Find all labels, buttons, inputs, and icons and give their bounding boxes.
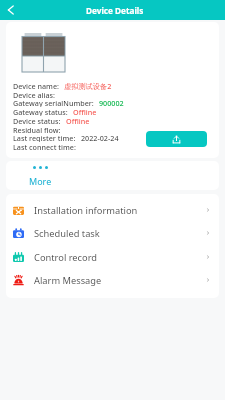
staticText: 900002 xyxy=(99,98,124,107)
staticText: Installation information xyxy=(34,204,138,217)
staticText: Device Details xyxy=(86,5,144,16)
button[interactable]: Control record xyxy=(6,245,219,269)
staticText: Device status: xyxy=(13,116,61,125)
staticText: Offline xyxy=(73,107,97,116)
button[interactable]: Upload xyxy=(146,131,207,147)
staticText: 虚拟测试设备2 xyxy=(64,81,112,90)
staticText: Offline xyxy=(66,116,90,125)
staticText: Last connect time: xyxy=(13,142,76,151)
staticText: Gateway status: xyxy=(13,107,68,116)
button[interactable]: Back xyxy=(0,0,21,20)
button[interactable]: More xyxy=(6,161,74,190)
button[interactable]: Scheduled task xyxy=(6,221,219,245)
staticText: Gateway serialNumber: xyxy=(13,98,94,107)
staticText: Scheduled task xyxy=(34,227,100,240)
staticText: Device name: xyxy=(13,81,59,90)
button[interactable]: Alarm Message xyxy=(6,268,219,292)
staticText: Residual flow: xyxy=(13,125,61,134)
button[interactable]: Installation information xyxy=(6,198,219,222)
staticText: Device alias: xyxy=(13,90,56,99)
staticText: 2022-02-24 xyxy=(81,133,119,142)
staticText: Control record xyxy=(34,251,98,264)
staticText: Alarm Message xyxy=(34,274,102,287)
staticText: More xyxy=(29,175,52,187)
staticText: Last register time: xyxy=(13,133,76,142)
